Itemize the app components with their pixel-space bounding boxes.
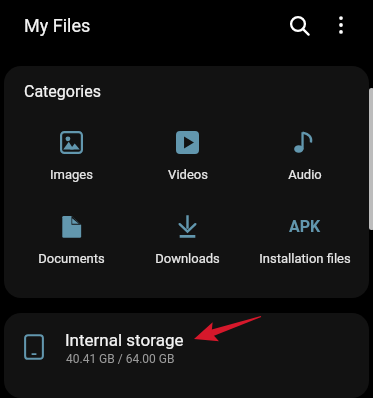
staticText: Images	[50, 167, 93, 182]
staticText: Categories	[24, 82, 101, 101]
staticText: 40.41 GB / 64.00 GB	[66, 352, 175, 366]
staticText: Audio	[288, 167, 322, 182]
button[interactable]: Search	[278, 4, 322, 48]
button[interactable]: More options	[319, 3, 363, 47]
button[interactable]: Videos	[131, 129, 244, 185]
button[interactable]: APK	[248, 213, 361, 269]
staticText: Documents	[38, 251, 105, 266]
button[interactable]: Documents	[15, 213, 128, 269]
staticText: Videos	[168, 167, 208, 182]
staticText: My Files	[24, 15, 91, 36]
staticText: APK	[289, 217, 321, 236]
button[interactable]: Audio	[248, 129, 361, 185]
staticText: Installation files	[259, 251, 351, 266]
staticText: Internal storage	[65, 330, 184, 350]
button[interactable]: Internal storage	[4, 313, 369, 398]
staticText: Downloads	[155, 251, 220, 266]
button[interactable]: Downloads	[131, 213, 244, 269]
button[interactable]: Images	[15, 129, 128, 185]
